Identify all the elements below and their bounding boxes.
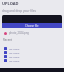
button[interactable]: file name [4,58,60,62]
staticText: file name [9,47,20,50]
staticText: Choose file [25,24,39,28]
staticText: drag and drop your files [2,9,36,13]
staticText: photo_2024.png [9,31,29,35]
staticText: file name [9,59,20,62]
button[interactable]: photo_2024.png [4,31,60,35]
staticText: Recent [3,38,12,42]
button[interactable]: file name [4,50,60,54]
button[interactable]: file name [4,54,60,58]
staticText: file name [9,51,20,54]
button[interactable]: file name [4,46,60,50]
staticText: file name [9,55,20,58]
staticText: UPLOAD [2,1,19,6]
button[interactable]: Choose file [2,23,62,28]
